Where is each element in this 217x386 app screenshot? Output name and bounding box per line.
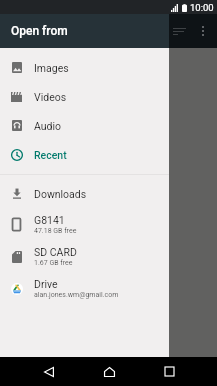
staticText: SD CARD bbox=[34, 246, 77, 258]
staticText: Drive bbox=[34, 278, 58, 290]
button[interactable]: Audio bbox=[0, 111, 169, 140]
button[interactable]: Videos bbox=[0, 82, 169, 111]
button[interactable]: SD CARD bbox=[0, 240, 169, 272]
staticText: alan.jones.wm@gmail.com bbox=[34, 291, 119, 299]
staticText: Images bbox=[34, 62, 69, 74]
button[interactable]: Home bbox=[99, 359, 119, 384]
staticText: 47.18 GB free bbox=[34, 227, 77, 235]
staticText: Audio bbox=[34, 120, 62, 132]
staticText: G8141 bbox=[34, 214, 65, 226]
staticText: Open from bbox=[11, 24, 68, 38]
staticText: 1.67 GB free bbox=[34, 259, 73, 267]
staticText: Downloads bbox=[34, 188, 87, 200]
button[interactable]: Images bbox=[0, 53, 169, 82]
button[interactable]: Downloads bbox=[0, 179, 169, 208]
button[interactable]: Recent apps bbox=[159, 359, 179, 384]
button[interactable]: Back bbox=[39, 359, 59, 384]
staticText: 10:00 bbox=[190, 2, 214, 13]
staticText: Videos bbox=[34, 91, 67, 103]
button[interactable]: Open from bbox=[0, 14, 169, 48]
button[interactable]: Recent bbox=[0, 140, 169, 169]
button[interactable]: More options bbox=[195, 14, 211, 48]
button[interactable]: Drive bbox=[0, 272, 169, 304]
staticText: Recent bbox=[34, 149, 67, 161]
button[interactable]: G8141 bbox=[0, 208, 169, 240]
